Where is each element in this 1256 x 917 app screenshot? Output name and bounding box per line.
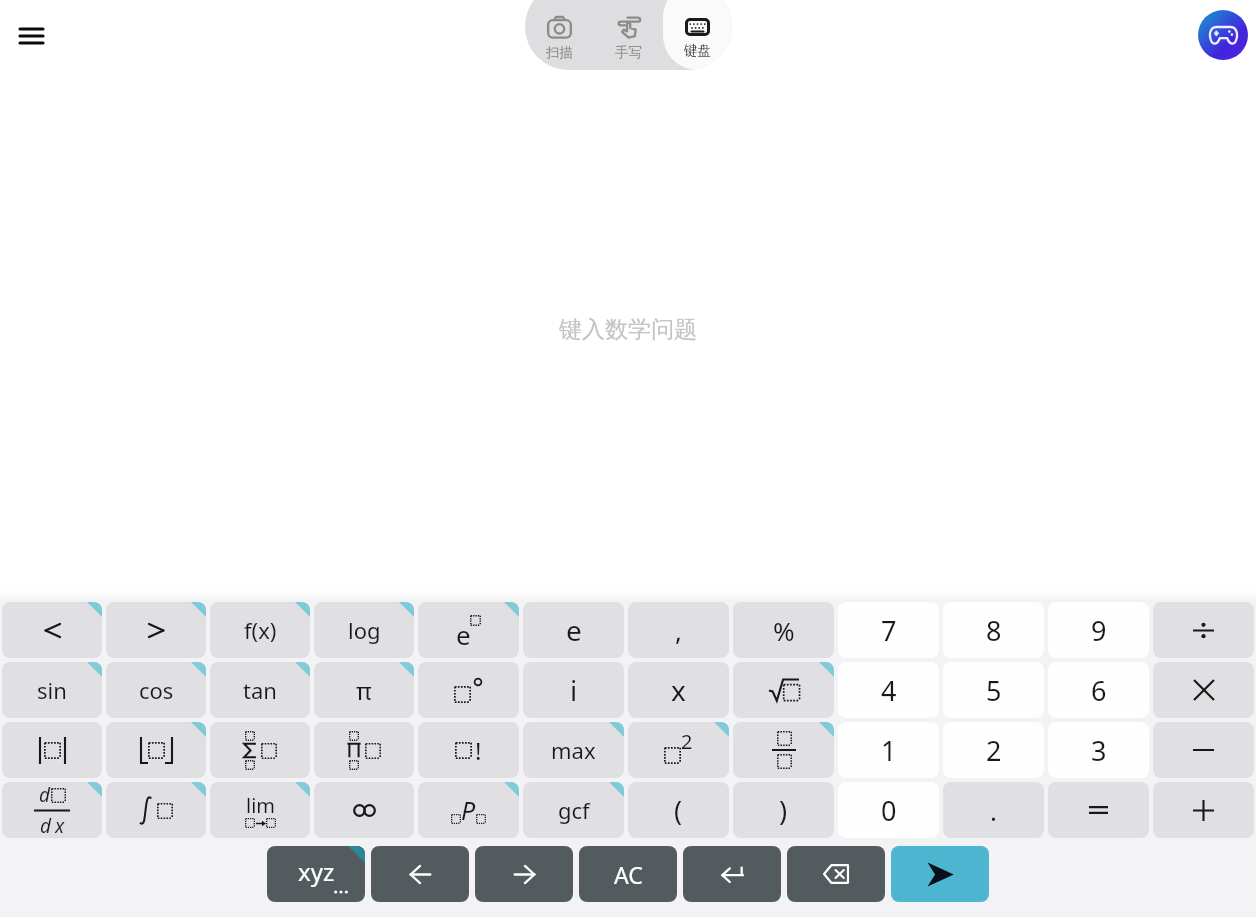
staticText: AC: [614, 859, 643, 890]
button[interactable]: New line: [683, 846, 781, 902]
staticText: 键入数学问题: [559, 315, 697, 344]
button[interactable]: 扫描: [525, 0, 594, 70]
button[interactable]: gcf: [523, 782, 624, 838]
staticText: tan: [243, 675, 277, 705]
staticText: 9: [1091, 612, 1107, 649]
staticText: 手写: [615, 44, 642, 61]
staticText: x: [55, 813, 65, 838]
button[interactable]: 9: [1048, 602, 1149, 658]
staticText: 1: [881, 732, 897, 769]
button[interactable]: e^: [418, 602, 519, 658]
button[interactable]: xyz: [267, 846, 365, 902]
button[interactable]: mul: [1153, 662, 1254, 718]
button[interactable]: plus: [1153, 782, 1254, 838]
button[interactable]: 1: [838, 722, 939, 778]
button[interactable]: sqrt: [733, 662, 834, 718]
button[interactable]: minus: [1153, 722, 1254, 778]
button[interactable]: 6: [1048, 662, 1149, 718]
staticText: π: [356, 674, 372, 707]
staticText: gcf: [558, 795, 590, 825]
button[interactable]: 4: [838, 662, 939, 718]
button[interactable]: =: [1048, 782, 1149, 838]
staticText: 7: [881, 612, 897, 649]
button[interactable]: inf: [314, 782, 414, 838]
button[interactable]: perm: [418, 782, 519, 838]
button[interactable]: Submit: [891, 846, 989, 902]
staticText: lim: [246, 792, 276, 819]
staticText: %: [773, 613, 795, 648]
button[interactable]: pi: [314, 662, 414, 718]
button[interactable]: Move right: [475, 846, 573, 902]
button[interactable]: lim: [210, 782, 310, 838]
staticText: !: [475, 734, 482, 767]
button[interactable]: sin: [2, 662, 102, 718]
button[interactable]: deg: [418, 662, 519, 718]
button[interactable]: 键盘: [663, 0, 732, 70]
staticText: x: [671, 671, 686, 709]
staticText: 4: [881, 672, 897, 709]
button[interactable]: <: [2, 602, 102, 658]
button[interactable]: floor: [106, 722, 206, 778]
button[interactable]: 0: [838, 782, 939, 838]
button[interactable]: frac: [733, 722, 834, 778]
staticText: ): [779, 792, 788, 829]
button[interactable]: cos: [106, 662, 206, 718]
staticText: 3: [1091, 732, 1107, 769]
button[interactable]: ): [733, 782, 834, 838]
button[interactable]: >: [106, 602, 206, 658]
staticText: e: [456, 617, 471, 652]
staticText: 8: [986, 612, 1002, 649]
staticText: 键盘: [684, 42, 711, 59]
button[interactable]: Move left: [371, 846, 469, 902]
button[interactable]: f(x): [210, 602, 310, 658]
staticText: P: [461, 793, 476, 827]
button[interactable]: prod: [314, 722, 414, 778]
button[interactable]: log: [314, 602, 414, 658]
staticText: max: [551, 735, 596, 765]
button[interactable]: ddx: [2, 782, 102, 838]
button[interactable]: 手写: [594, 0, 663, 70]
staticText: 0: [881, 792, 897, 829]
button[interactable]: i: [523, 662, 624, 718]
staticText: 5: [986, 672, 1002, 709]
button[interactable]: 8: [943, 602, 1044, 658]
staticText: d: [40, 813, 52, 838]
button[interactable]: e: [523, 602, 624, 658]
button[interactable]: %: [733, 602, 834, 658]
staticText: 2: [681, 728, 693, 755]
button[interactable]: max: [523, 722, 624, 778]
staticText: cos: [139, 675, 174, 705]
staticText: ,: [675, 613, 682, 648]
button[interactable]: ,: [628, 602, 729, 658]
staticText: d: [39, 782, 51, 808]
button[interactable]: div: [1153, 602, 1254, 658]
staticText: sin: [37, 675, 67, 705]
button[interactable]: fact: [418, 722, 519, 778]
staticText: f(x): [244, 615, 277, 645]
button[interactable]: 5: [943, 662, 1044, 718]
button[interactable]: Menu: [3, 8, 59, 64]
button[interactable]: .: [943, 782, 1044, 838]
button[interactable]: Clear all: [579, 846, 677, 902]
staticText: log: [348, 615, 381, 645]
button[interactable]: 7: [838, 602, 939, 658]
button[interactable]: x: [628, 662, 729, 718]
button[interactable]: tan: [210, 662, 310, 718]
button[interactable]: int: [106, 782, 206, 838]
staticText: .: [990, 793, 997, 828]
button[interactable]: 2: [943, 722, 1044, 778]
staticText: 2: [986, 732, 1002, 769]
staticText: e: [566, 611, 582, 649]
button[interactable]: (: [628, 782, 729, 838]
staticText: 6: [1091, 672, 1107, 709]
button[interactable]: Profile: [1198, 10, 1248, 60]
staticText: i: [570, 671, 578, 709]
button[interactable]: abs: [2, 722, 102, 778]
staticText: xyz: [298, 855, 335, 888]
button[interactable]: 3: [1048, 722, 1149, 778]
staticText: 扫描: [546, 44, 573, 61]
button[interactable]: Backspace: [787, 846, 885, 902]
staticText: (: [674, 792, 683, 829]
button[interactable]: sum: [210, 722, 310, 778]
button[interactable]: sq: [628, 722, 729, 778]
